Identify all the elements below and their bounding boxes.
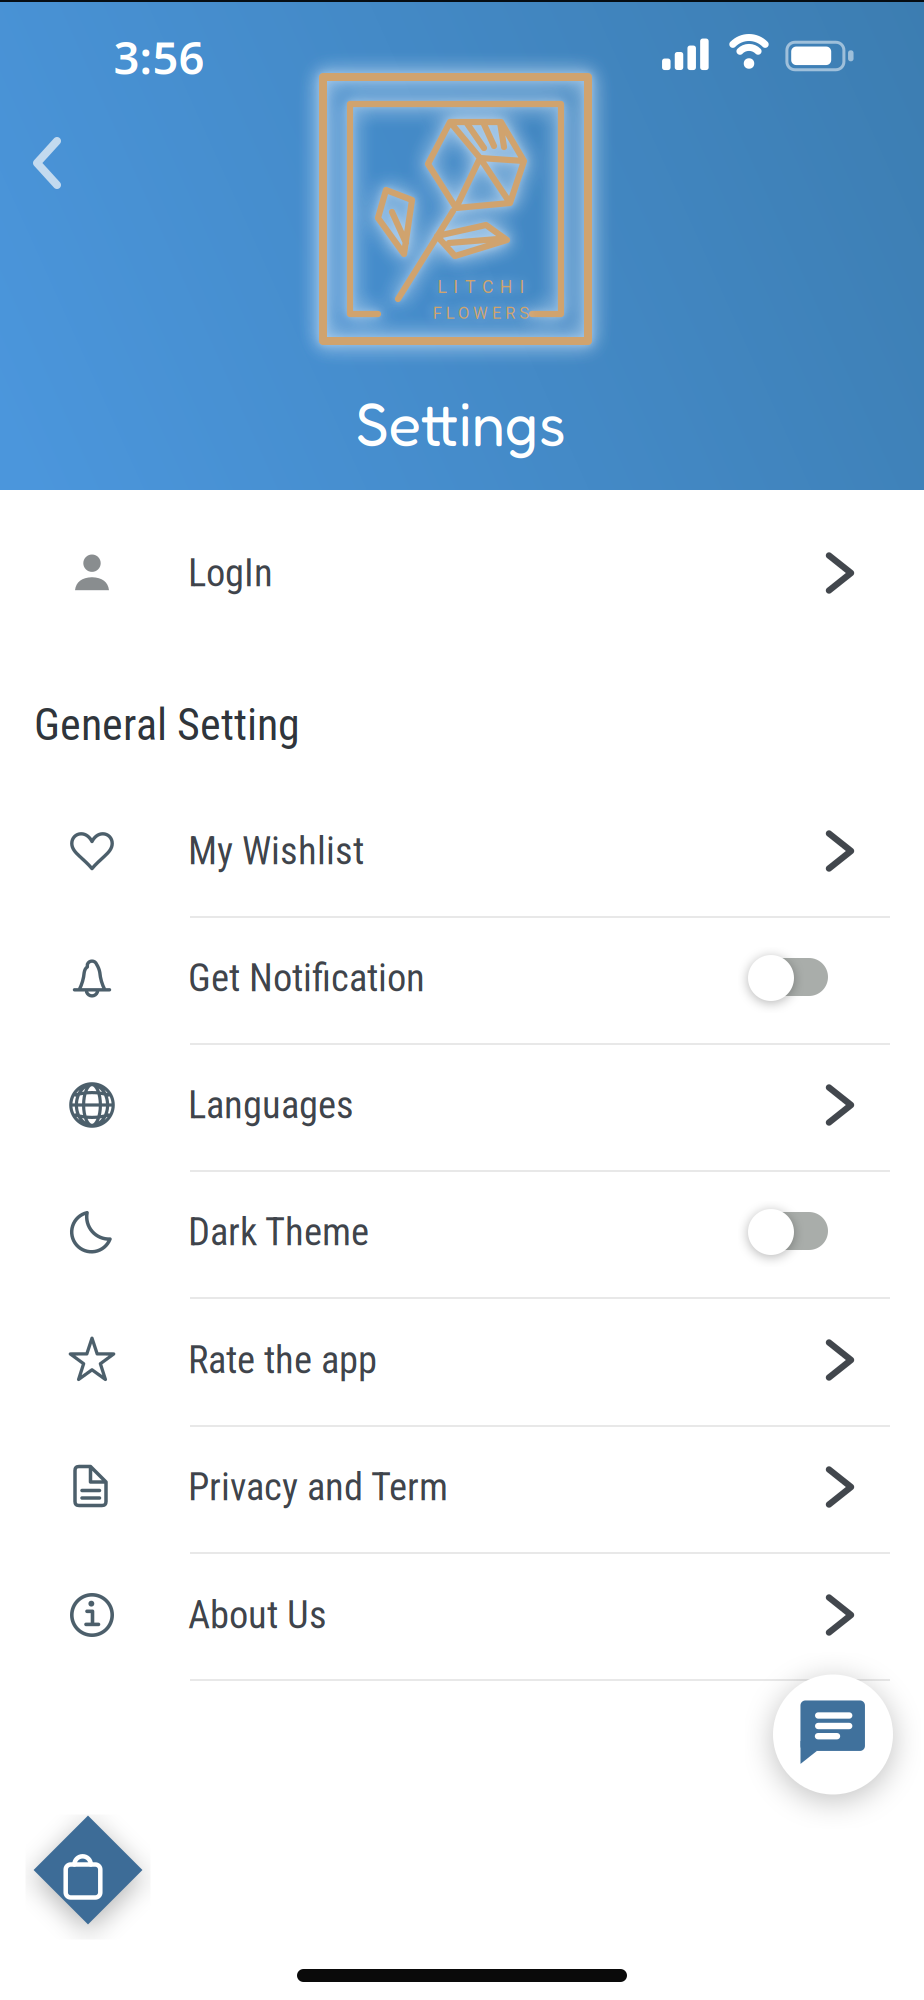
button[interactable]: Back (27, 135, 67, 191)
button[interactable]: LogIn (0, 509, 924, 636)
button[interactable]: Shop (23, 1807, 153, 1937)
button[interactable]: Dark Theme (0, 1168, 924, 1295)
button[interactable]: Languages (0, 1041, 924, 1168)
button[interactable]: My Wishlist (0, 787, 924, 914)
staticText: Settings (355, 387, 566, 459)
button[interactable]: Chat (768, 1669, 898, 1799)
staticText: About Us (188, 1592, 327, 1638)
staticText: LogIn (188, 550, 273, 596)
staticText: 3:56 (113, 27, 204, 87)
staticText: Privacy and Term (188, 1464, 448, 1510)
staticText: Languages (188, 1082, 354, 1128)
staticText: FLOWERS (433, 303, 529, 323)
button[interactable]: About Us (0, 1551, 924, 1678)
staticText: General Setting (34, 699, 300, 751)
staticText: Rate the app (188, 1337, 377, 1383)
button[interactable]: Get Notification (0, 914, 924, 1041)
button[interactable]: Privacy and Term (0, 1423, 924, 1550)
button[interactable]: Rate the app (0, 1296, 924, 1423)
staticText: LITCHI (437, 277, 524, 297)
staticText: Dark Theme (188, 1209, 369, 1255)
staticText: My Wishlist (188, 828, 364, 874)
staticText: Get Notification (188, 955, 425, 1001)
